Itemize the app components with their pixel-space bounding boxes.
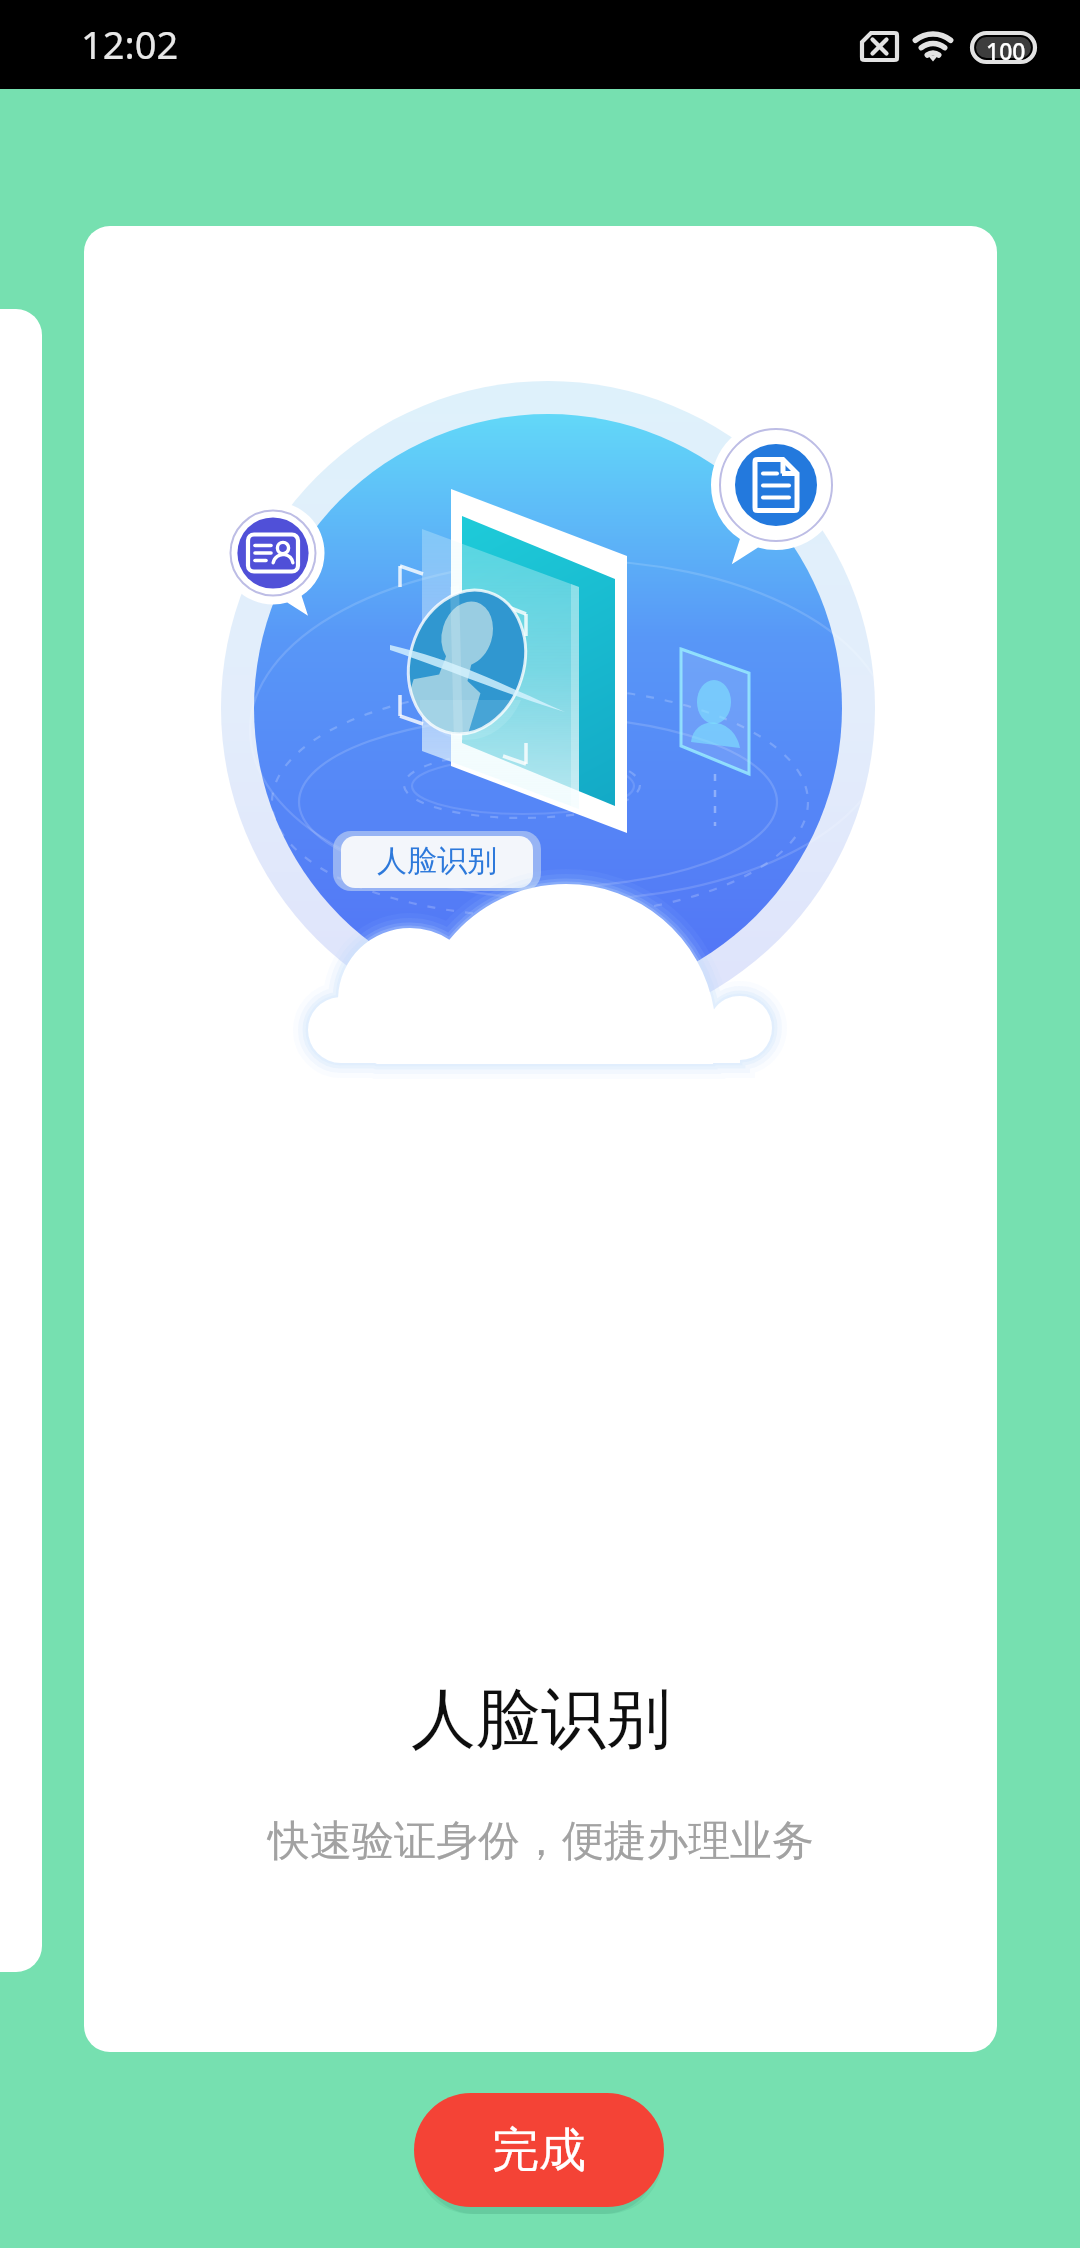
staticText: 100	[986, 35, 1026, 66]
staticText: 完成	[492, 2121, 586, 2180]
button[interactable]: Previous page	[0, 309, 42, 1972]
staticText: 人脸识别	[411, 1678, 671, 1760]
staticText: 12:02	[81, 18, 179, 70]
button[interactable]: 完成	[414, 2093, 664, 2207]
staticText: 快速验证身份，便捷办理业务	[268, 1815, 814, 1868]
staticText: 人脸识别	[377, 842, 497, 880]
